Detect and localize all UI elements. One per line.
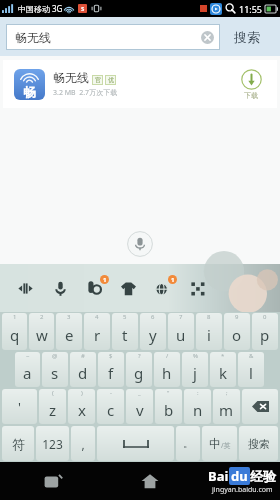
staticText: $: [109, 352, 113, 360]
button[interactable]: *: [210, 352, 236, 387]
staticText: d: [78, 363, 88, 383]
button[interactable]: Theme: [115, 275, 141, 301]
staticText: h: [162, 363, 172, 383]
staticText: /: [166, 352, 169, 360]
staticText: v: [136, 400, 144, 420]
button[interactable]: ): [68, 389, 95, 424]
staticText: s: [51, 363, 59, 383]
button[interactable]: Backspace: [242, 389, 278, 424]
button[interactable]: %: [182, 352, 208, 387]
button[interactable]: Download: [231, 69, 271, 100]
button[interactable]: 搜索: [220, 17, 274, 56]
staticText: 下载: [244, 91, 258, 100]
staticText: &: [249, 352, 254, 360]
button[interactable]: 搜索: [239, 426, 278, 461]
staticText: (: [52, 389, 54, 397]
staticText: q: [10, 325, 20, 345]
staticText: 畅无线: [15, 30, 51, 45]
staticText: n: [193, 400, 203, 420]
staticText: 3: [67, 313, 71, 321]
button[interactable]: ': [2, 389, 37, 424]
staticText: 优: [108, 76, 114, 84]
staticText: t: [122, 325, 128, 345]
staticText: ): [81, 389, 83, 397]
staticText: /英: [221, 441, 231, 451]
staticText: ;: [226, 389, 228, 397]
staticText: k: [219, 363, 228, 383]
button[interactable]: ?: [126, 352, 152, 387]
staticText: 1: [13, 313, 17, 321]
button[interactable]: :: [184, 389, 211, 424]
button[interactable]: 123: [36, 426, 69, 461]
button[interactable]: Home: [135, 466, 165, 496]
button[interactable]: Recents: [38, 466, 68, 496]
button[interactable]: &: [238, 352, 264, 387]
button[interactable]: _: [126, 389, 153, 424]
button[interactable]: Language: [149, 275, 175, 301]
button[interactable]: 8: [196, 313, 222, 350]
button[interactable]: ~: [15, 352, 40, 387]
staticText: *: [221, 352, 225, 360]
button[interactable]: Emoji: [81, 275, 107, 301]
staticText: p: [260, 325, 270, 345]
button[interactable]: 6: [140, 313, 166, 350]
button[interactable]: -: [97, 389, 124, 424]
button[interactable]: Move cursor: [12, 275, 38, 301]
button[interactable]: 0: [252, 313, 278, 350]
staticText: -: [110, 389, 112, 397]
button[interactable]: 1: [2, 313, 27, 350]
button[interactable]: 符: [2, 426, 34, 461]
button[interactable]: 畅: [3, 60, 277, 108]
staticText: o: [232, 325, 242, 345]
button[interactable]: ,: [71, 426, 95, 461]
button[interactable]: 4: [84, 313, 110, 350]
staticText: l: [249, 363, 253, 383]
button[interactable]: (: [39, 389, 66, 424]
button[interactable]: @: [42, 352, 68, 387]
staticText: 5: [123, 313, 127, 321]
staticText: ~: [26, 352, 30, 360]
staticText: 搜索: [234, 29, 260, 45]
staticText: 畅: [23, 84, 36, 100]
button[interactable]: Voice input: [125, 229, 155, 259]
button[interactable]: 畅无线: [6, 24, 220, 50]
staticText: 符: [12, 436, 25, 452]
staticText: ?: [138, 352, 141, 360]
staticText: f: [108, 363, 114, 383]
staticText: 8: [207, 313, 211, 321]
staticText: u: [176, 325, 186, 345]
staticText: ,: [81, 436, 85, 452]
button[interactable]: 9: [224, 313, 250, 350]
button[interactable]: Clear: [201, 31, 214, 44]
staticText: r: [94, 325, 101, 345]
staticText: 。: [183, 437, 193, 450]
button[interactable]: Scan QR code: [184, 275, 210, 301]
button[interactable]: 7: [168, 313, 194, 350]
button[interactable]: 2: [29, 313, 54, 350]
staticText: i: [207, 325, 211, 345]
staticText: x: [78, 400, 86, 420]
staticText: 畅无线: [53, 70, 89, 85]
button[interactable]: /: [154, 352, 180, 387]
staticText: 1: [103, 276, 107, 284]
staticText: 3.2 MB 2.7万次下载: [53, 88, 118, 98]
button[interactable]: #: [70, 352, 96, 387]
staticText: :: [197, 389, 199, 397]
staticText: 官: [95, 76, 101, 84]
staticText: 3G: [52, 3, 63, 14]
button[interactable]: 。: [176, 426, 200, 461]
staticText: 2: [40, 313, 44, 321]
button[interactable]: 3: [56, 313, 82, 350]
staticText: Bai: [208, 467, 229, 485]
button[interactable]: Space: [97, 426, 174, 461]
staticText: 11:55: [239, 3, 263, 15]
button[interactable]: 5: [112, 313, 138, 350]
staticText: 7: [179, 313, 183, 321]
staticText: j: [193, 363, 197, 383]
button[interactable]: 中: [202, 426, 237, 461]
staticText: a: [23, 363, 32, 383]
button[interactable]: ": [155, 389, 182, 424]
button[interactable]: Voice input: [47, 275, 73, 301]
button[interactable]: $: [98, 352, 124, 387]
button[interactable]: ;: [213, 389, 240, 424]
